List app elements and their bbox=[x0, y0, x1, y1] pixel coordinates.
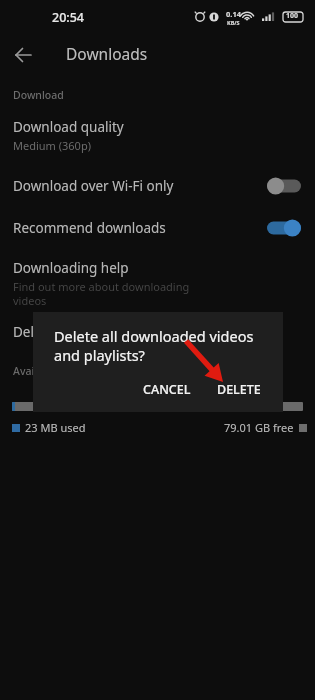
button[interactable]: Back bbox=[10, 39, 42, 71]
staticText: Download quality bbox=[13, 118, 124, 136]
button[interactable]: Recommend downloads bbox=[0, 207, 315, 249]
button[interactable]: Download over Wi-Fi only bbox=[0, 165, 315, 207]
staticText: Medium (360p) bbox=[13, 138, 91, 153]
staticText: 100 bbox=[286, 11, 299, 21]
staticText: 20:54 bbox=[52, 9, 85, 26]
staticText: DELETE bbox=[217, 381, 261, 398]
button[interactable]: Delete all downloads bbox=[0, 314, 315, 350]
button[interactable]: Download quality bbox=[0, 112, 315, 159]
staticText: Download bbox=[13, 88, 64, 102]
staticText: 0.14 bbox=[226, 9, 241, 19]
staticText: Recommend downloads bbox=[13, 219, 166, 237]
button[interactable]: CANCEL bbox=[135, 375, 199, 404]
staticText: Delete all downloads bbox=[13, 323, 145, 341]
staticText: Find out more about downloading videos bbox=[13, 279, 190, 308]
button[interactable]: Downloading help bbox=[0, 253, 315, 314]
staticText: CANCEL bbox=[143, 381, 191, 398]
staticText: Delete all downloaded videos and playlis… bbox=[54, 326, 271, 365]
staticText: Available storage bbox=[13, 364, 100, 378]
staticText: KB/S bbox=[227, 19, 240, 26]
staticText: Downloading help bbox=[13, 259, 129, 277]
staticText: 23 MB used bbox=[25, 420, 86, 435]
staticText: 79.01 GB free bbox=[224, 420, 294, 435]
staticText: Download over Wi-Fi only bbox=[13, 177, 174, 195]
button[interactable]: DELETE bbox=[209, 375, 269, 404]
staticText: Downloads bbox=[66, 43, 148, 64]
